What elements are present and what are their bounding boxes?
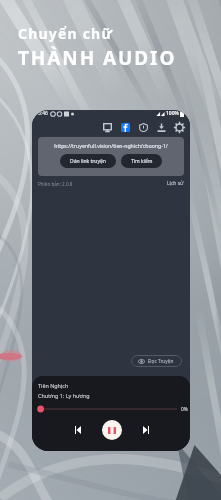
staticText: Tiên Nghịch xyxy=(38,382,69,389)
staticText: Chuyển chữ xyxy=(18,24,114,43)
button[interactable]: Desktop site xyxy=(98,120,116,134)
button[interactable]: Lịch sử xyxy=(167,180,184,187)
staticText: Dán link truyện xyxy=(70,158,106,165)
staticText: Đọc Truyện xyxy=(148,358,174,365)
button[interactable]: Settings xyxy=(170,120,188,134)
button[interactable]: Tìm kiếm xyxy=(121,154,162,168)
button[interactable]: Download xyxy=(152,120,170,134)
button[interactable]: Next xyxy=(138,422,154,438)
button[interactable]: Previous xyxy=(70,422,86,438)
staticText: 100% xyxy=(166,110,179,117)
staticText: 0% xyxy=(181,406,188,413)
staticText: Phiên bản: 2.0.8 xyxy=(38,181,73,187)
staticText: Tìm kiếm xyxy=(131,158,153,165)
staticText: Lịch sử xyxy=(167,180,184,187)
button[interactable]: Protection xyxy=(134,120,152,134)
staticText: THÀNH AUDIO xyxy=(18,45,177,71)
button[interactable]: Đọc Truyện xyxy=(131,355,182,367)
button[interactable]: Facebook xyxy=(116,120,134,134)
button[interactable]: Dán link truyện xyxy=(60,154,116,168)
staticText: 3:46 xyxy=(38,110,48,117)
staticText: Chương 1: Ly hương xyxy=(38,392,90,399)
button[interactable]: Pause xyxy=(102,420,122,440)
staticText: https://truyenfull.vision/tien-nghich/ch… xyxy=(38,142,184,149)
